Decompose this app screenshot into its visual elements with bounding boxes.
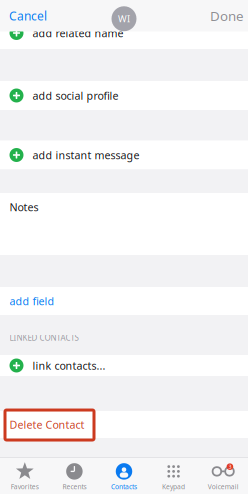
staticText: WI <box>118 13 130 25</box>
staticText: Notes <box>9 200 38 214</box>
staticText: add social profile <box>32 88 118 103</box>
button[interactable]: link contacts... <box>0 355 248 376</box>
button[interactable]: Recents <box>50 458 99 494</box>
staticText: add related name <box>32 26 123 40</box>
staticText: Contacts <box>111 482 137 491</box>
staticText: link contacts... <box>32 358 105 373</box>
staticText: Delete Contact <box>9 417 84 432</box>
button[interactable]: Cancel <box>7 4 49 28</box>
button[interactable]: Contacts <box>99 458 149 494</box>
staticText: add instant message <box>32 148 139 162</box>
staticText: 3 <box>228 463 231 470</box>
button[interactable]: 3 <box>198 458 248 494</box>
button[interactable]: Delete Contact <box>0 411 248 438</box>
button[interactable]: Keypad <box>149 458 198 494</box>
button[interactable]: Done <box>208 3 244 29</box>
staticText: Recents <box>62 482 86 491</box>
staticText: Cancel <box>9 8 47 24</box>
button[interactable]: add field <box>0 287 248 315</box>
staticText: Keypad <box>162 482 185 491</box>
staticText: add field <box>9 294 54 308</box>
button[interactable]: Edit contact photo <box>111 6 136 31</box>
staticText: LINKED CONTACTS <box>9 332 78 343</box>
button[interactable]: Favorites <box>0 458 50 494</box>
staticText: Done <box>210 7 244 25</box>
staticText: Voicemail <box>208 482 239 491</box>
button[interactable]: add instant message <box>0 140 248 169</box>
staticText: Favorites <box>11 482 39 491</box>
button[interactable]: add related name <box>0 17 248 49</box>
button[interactable]: add social profile <box>0 81 248 110</box>
